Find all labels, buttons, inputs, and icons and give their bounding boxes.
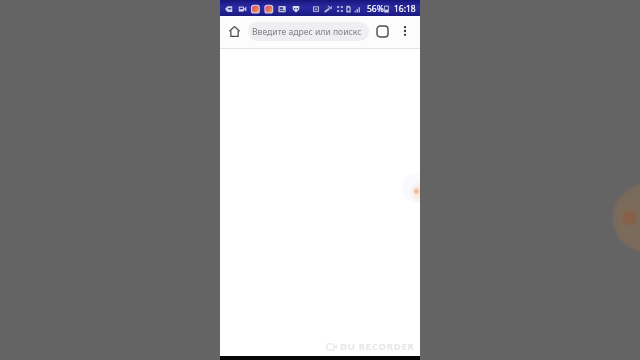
staticText: DU RECORDER <box>340 340 415 353</box>
button[interactable]: Home <box>224 21 244 41</box>
staticText: 56% <box>367 3 384 15</box>
staticText: 16:18 <box>394 3 416 15</box>
staticText: Введите адрес или поискс <box>252 26 362 38</box>
button[interactable]: Search or type address <box>248 22 369 41</box>
button[interactable]: More options <box>395 21 415 41</box>
button[interactable]: Tabs <box>372 21 392 41</box>
